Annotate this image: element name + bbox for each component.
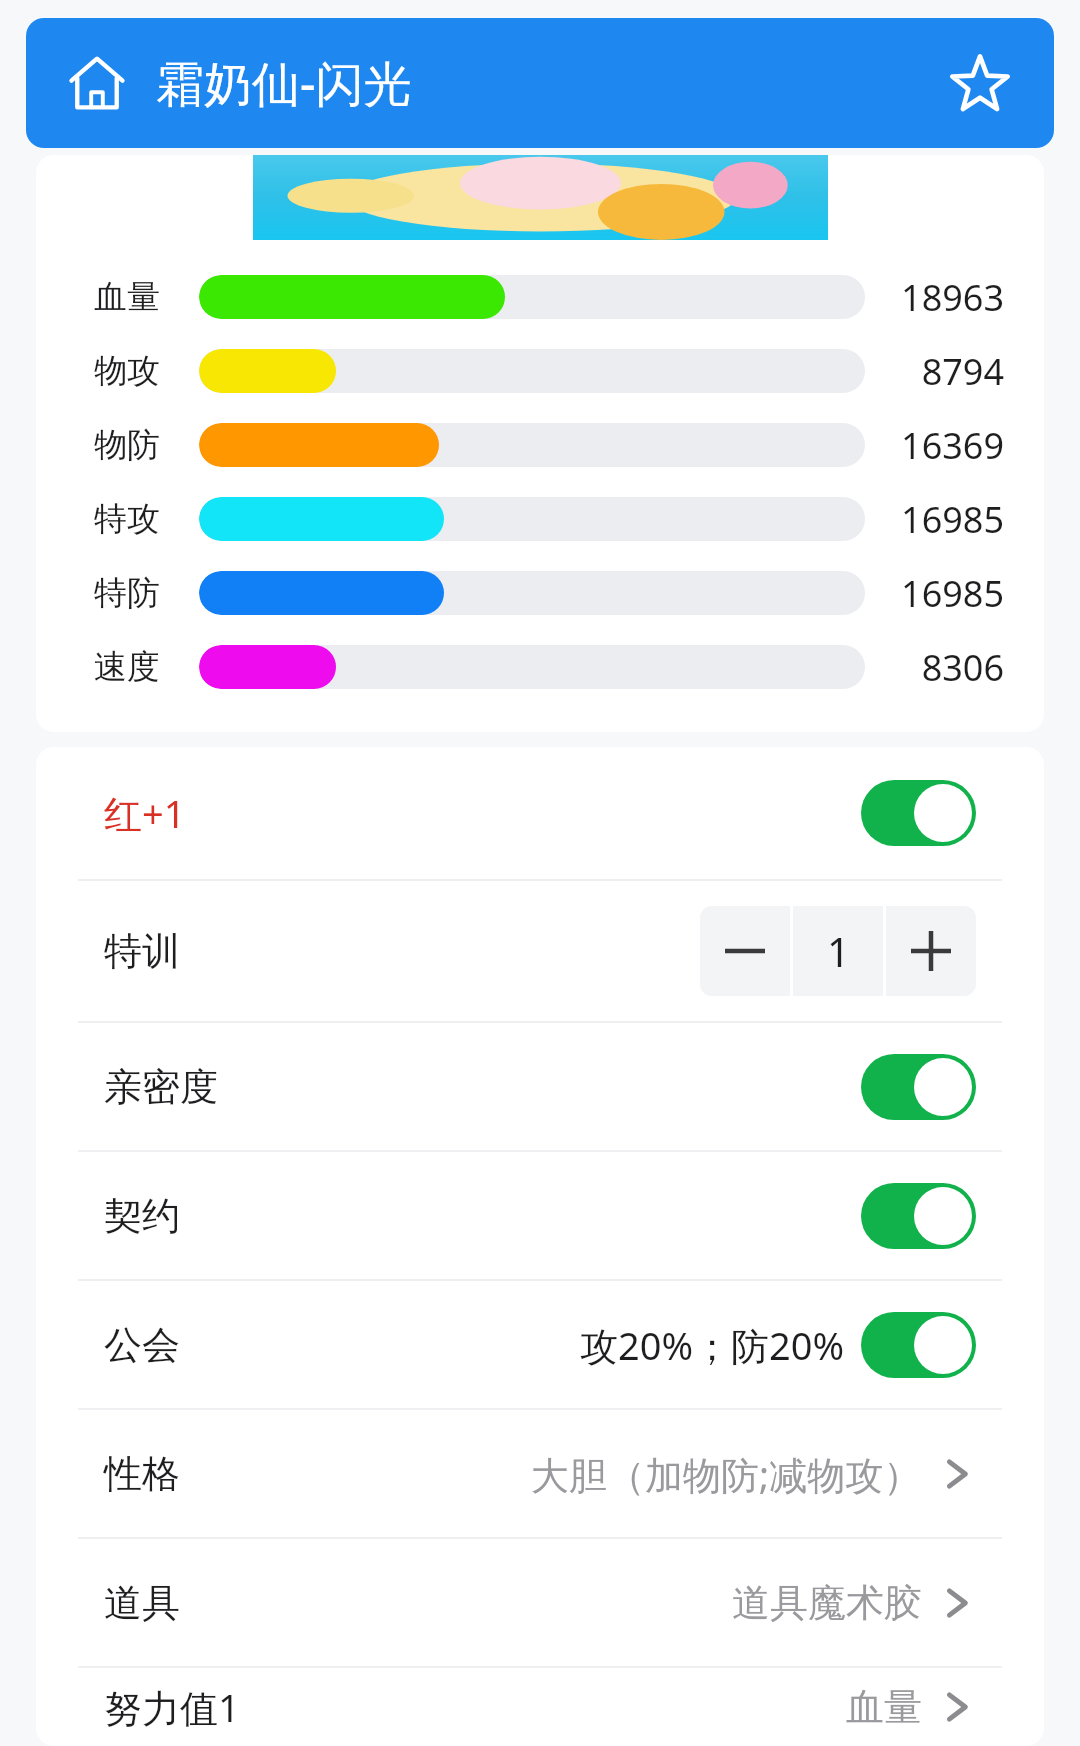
staticText: 血量: [846, 1683, 922, 1731]
staticText: 速度: [94, 646, 160, 688]
button[interactable]: [861, 1054, 976, 1120]
staticText: 公会: [104, 1321, 180, 1369]
staticText: 特训: [104, 927, 180, 975]
button[interactable]: [861, 1183, 976, 1249]
button[interactable]: Decrease: [700, 906, 790, 996]
staticText: 亲密度: [104, 1063, 218, 1111]
button[interactable]: 道具: [36, 1539, 1044, 1666]
button[interactable]: Favorite: [940, 43, 1020, 123]
staticText: 道具: [104, 1579, 180, 1627]
button[interactable]: [861, 780, 976, 846]
staticText: 道具魔术胶: [732, 1579, 922, 1627]
staticText: 16985: [901, 495, 1004, 544]
staticText: 性格: [104, 1450, 180, 1498]
button[interactable]: 红+1: [36, 747, 1044, 879]
staticText: 16985: [901, 569, 1004, 618]
button[interactable]: Increase: [886, 906, 976, 996]
staticText: 1: [827, 924, 850, 978]
button[interactable]: [861, 1312, 976, 1378]
button[interactable]: 公会: [36, 1281, 1044, 1408]
staticText: 攻20%；防20%: [580, 1319, 845, 1371]
button[interactable]: 努力值1: [36, 1668, 1044, 1746]
staticText: 红+1: [104, 787, 186, 839]
staticText: 霜奶仙-闪光: [156, 50, 412, 116]
staticText: 18963: [901, 273, 1004, 322]
staticText: 8794: [921, 347, 1004, 396]
staticText: 契约: [104, 1192, 180, 1240]
staticText: 8306: [921, 643, 1004, 692]
staticText: 大胆（加物防;减物攻）: [531, 1448, 922, 1500]
staticText: 物攻: [94, 350, 160, 392]
button[interactable]: 性格: [36, 1410, 1044, 1537]
staticText: 16369: [901, 421, 1004, 470]
staticText: 努力值1: [104, 1681, 240, 1733]
staticText: 物防: [94, 424, 160, 466]
staticText: 特攻: [94, 498, 160, 540]
button[interactable]: 契约: [36, 1152, 1044, 1279]
staticText: 血量: [94, 276, 160, 318]
button[interactable]: Home: [60, 46, 134, 120]
staticText: 特防: [94, 572, 160, 614]
button[interactable]: 亲密度: [36, 1023, 1044, 1150]
